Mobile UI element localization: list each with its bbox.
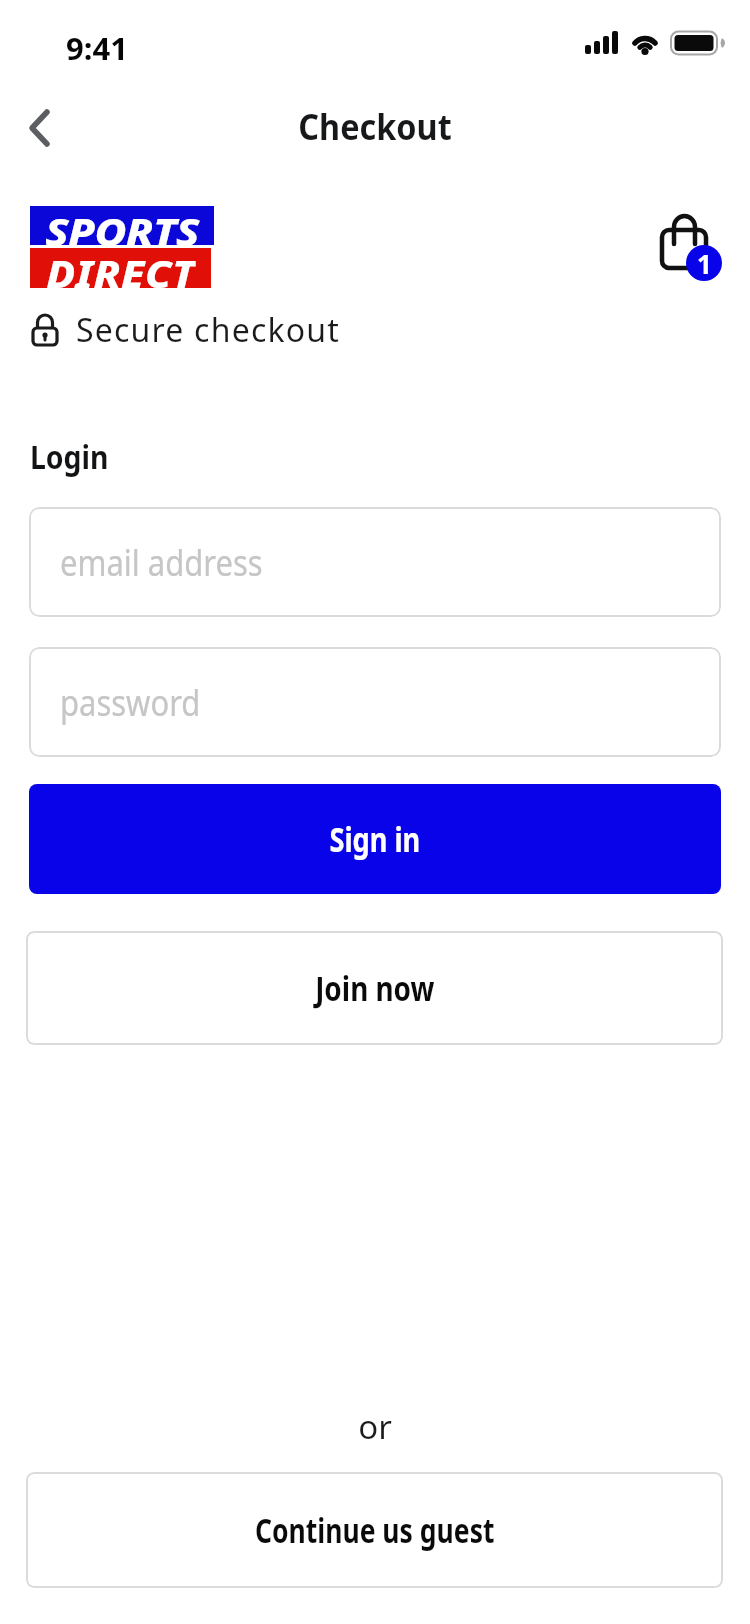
staticText: Join now (315, 965, 435, 1011)
staticText: 1 (697, 246, 712, 281)
staticText: DIRECT (46, 248, 196, 288)
button[interactable]: Join now (26, 931, 723, 1045)
button[interactable]: 1 (650, 205, 730, 290)
staticText: Continue us guest (255, 1507, 495, 1553)
staticText: or (0, 1404, 750, 1449)
staticText: Sign in (329, 816, 421, 862)
staticText: Checkout (37, 102, 712, 151)
button[interactable]: email address (29, 507, 721, 617)
button[interactable] (16, 104, 64, 152)
staticText: SPORTS (45, 206, 200, 245)
staticText: Login (30, 434, 109, 479)
staticText: password (60, 678, 201, 727)
button[interactable]: Sign in (29, 784, 721, 894)
staticText: email address (60, 538, 263, 587)
button[interactable]: Continue us guest (26, 1472, 723, 1588)
staticText: 9:41 (66, 27, 128, 69)
staticText: Secure checkout (76, 308, 341, 352)
button[interactable]: password (29, 647, 721, 757)
